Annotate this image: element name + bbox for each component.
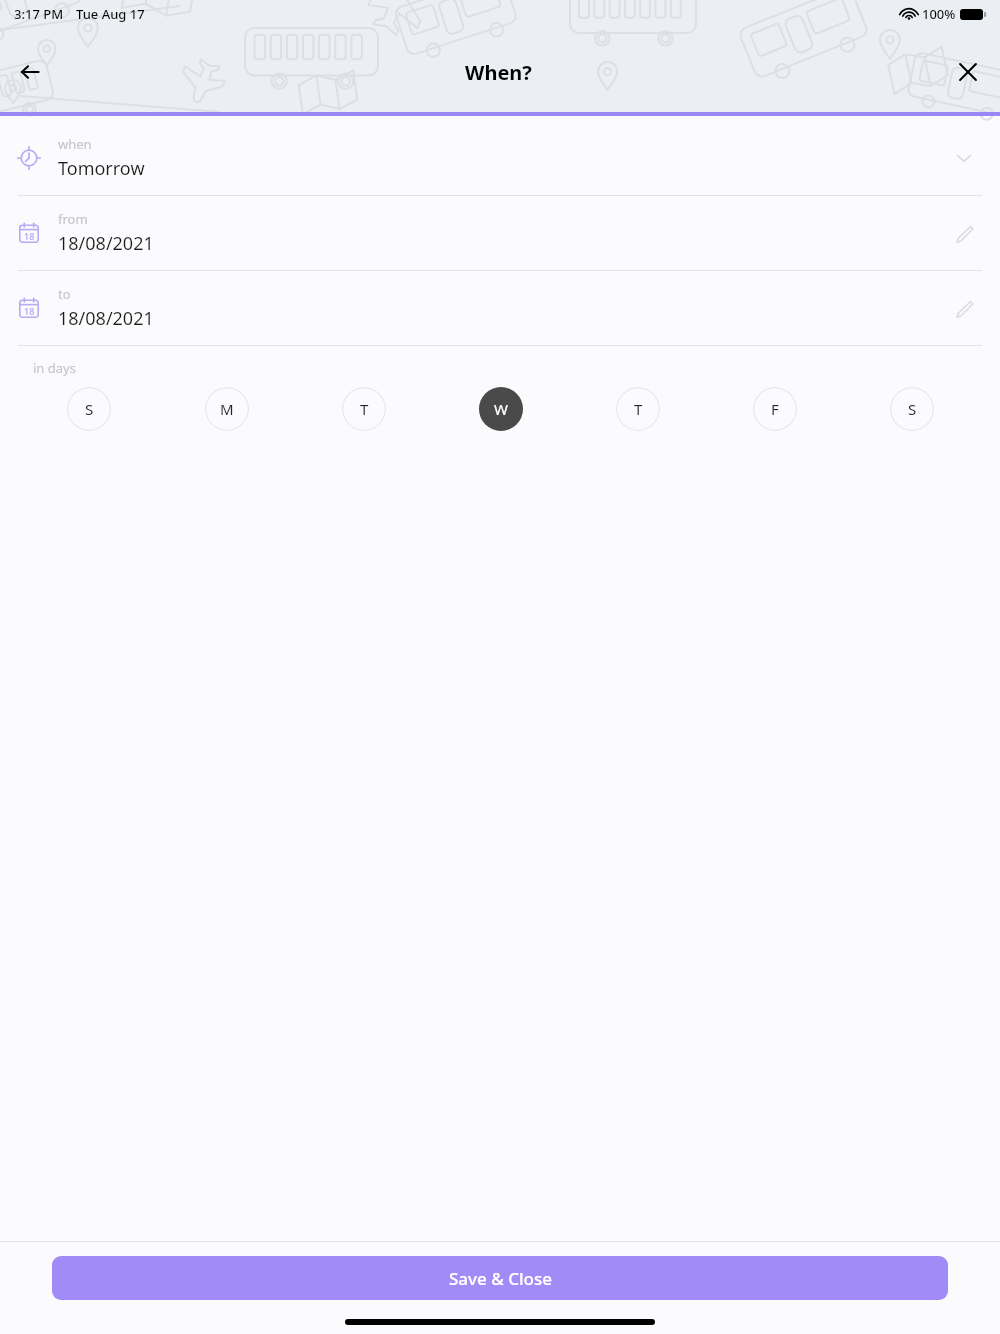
staticText: 18 [24, 305, 35, 317]
button[interactable]: Close [948, 52, 988, 92]
staticText: S [908, 399, 917, 419]
button[interactable]: M [205, 387, 249, 431]
button[interactable]: when [0, 120, 1000, 196]
other: Expand when options [948, 142, 980, 174]
button[interactable]: F [753, 387, 797, 431]
staticText: Tomorrow [58, 156, 145, 181]
staticText: S [85, 399, 94, 419]
staticText: in days [33, 359, 76, 377]
button[interactable]: S [67, 387, 111, 431]
staticText: Save & Close [449, 1267, 552, 1290]
staticText: Tue Aug 17 [76, 5, 145, 23]
staticText: W [494, 399, 508, 419]
staticText: F [771, 399, 779, 419]
button[interactable]: T [342, 387, 386, 431]
staticText: to [58, 285, 71, 303]
button[interactable]: Save & Close [52, 1256, 948, 1300]
button[interactable]: Back [10, 52, 50, 92]
staticText: When? [465, 59, 532, 86]
button[interactable]: S [890, 387, 934, 431]
staticText: M [220, 399, 234, 419]
staticText: 18 [24, 230, 35, 242]
button[interactable]: T [616, 387, 660, 431]
button[interactable]: W [479, 387, 523, 431]
staticText: when [58, 135, 92, 153]
staticText: from [58, 210, 88, 228]
button[interactable]: 18 [0, 271, 1000, 346]
staticText: 18/08/2021 [58, 306, 154, 331]
staticText: 3:17 PM [14, 5, 64, 23]
other: Edit to date [948, 292, 980, 324]
staticText: T [634, 399, 643, 419]
button[interactable]: 18 [0, 196, 1000, 271]
staticText: T [360, 399, 369, 419]
other: Edit from date [948, 217, 980, 249]
staticText: 18/08/2021 [58, 231, 154, 256]
staticText: 100% [922, 5, 956, 23]
